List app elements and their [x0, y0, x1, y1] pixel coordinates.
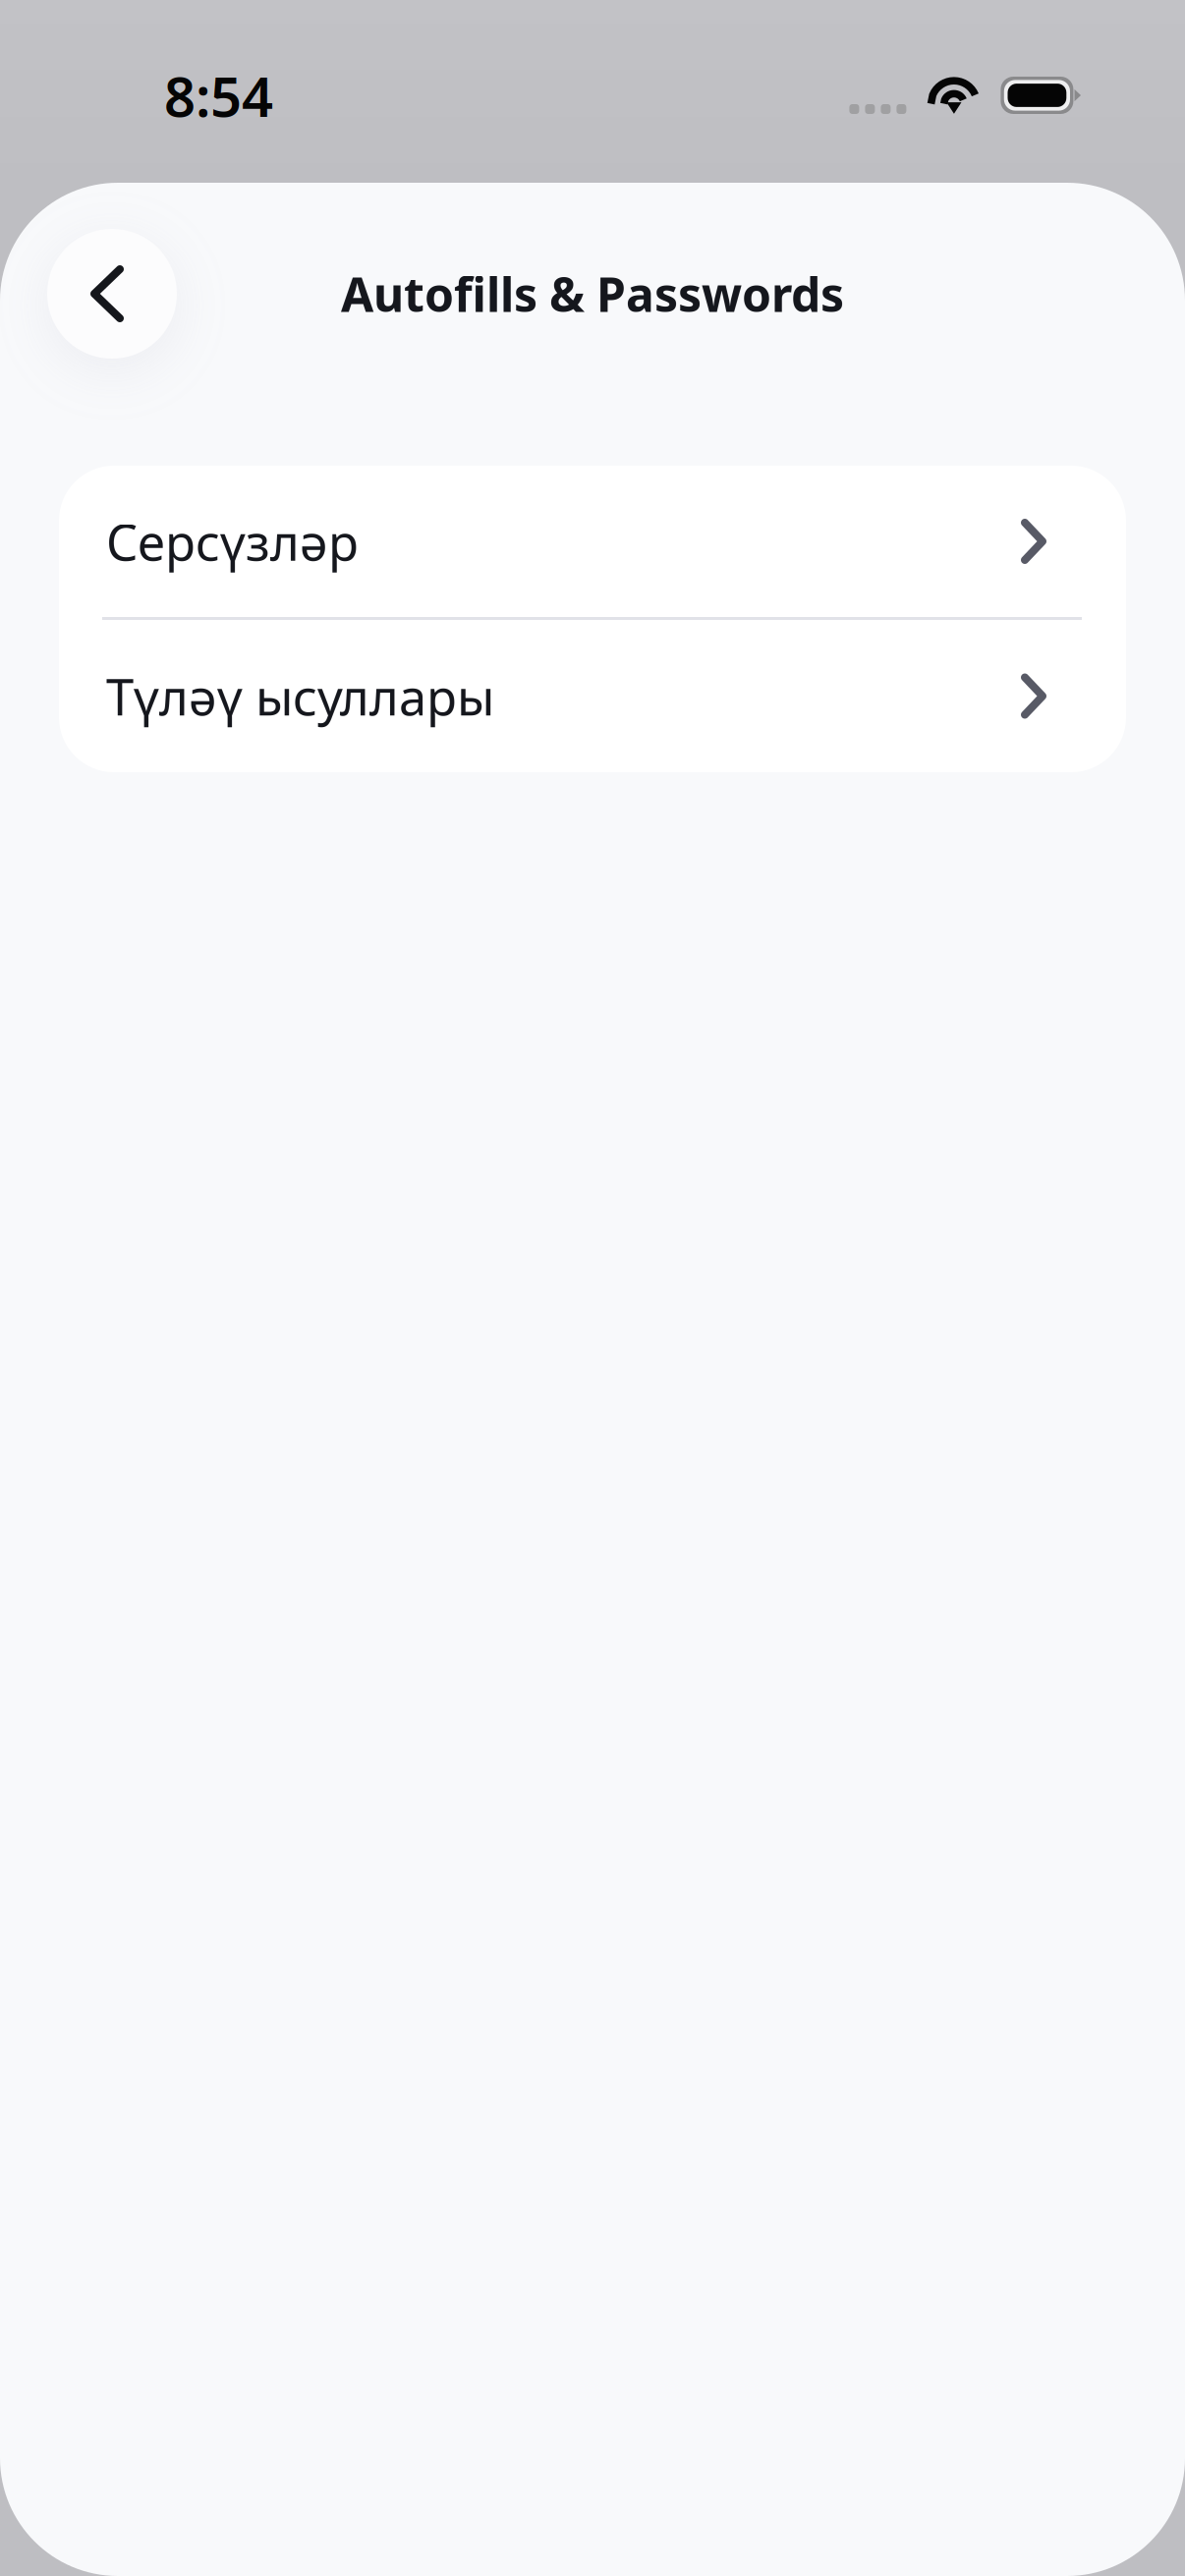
staticText: Түләү ысуллары	[106, 663, 494, 729]
button[interactable]: Back	[47, 229, 177, 359]
button[interactable]: Серсүзләр	[59, 466, 1126, 617]
staticText: Серсүзләр	[106, 508, 359, 574]
staticText: 8:54	[164, 59, 273, 132]
button[interactable]: Түләү ысуллары	[59, 620, 1126, 772]
staticText: Autofills & Passwords	[341, 262, 844, 325]
